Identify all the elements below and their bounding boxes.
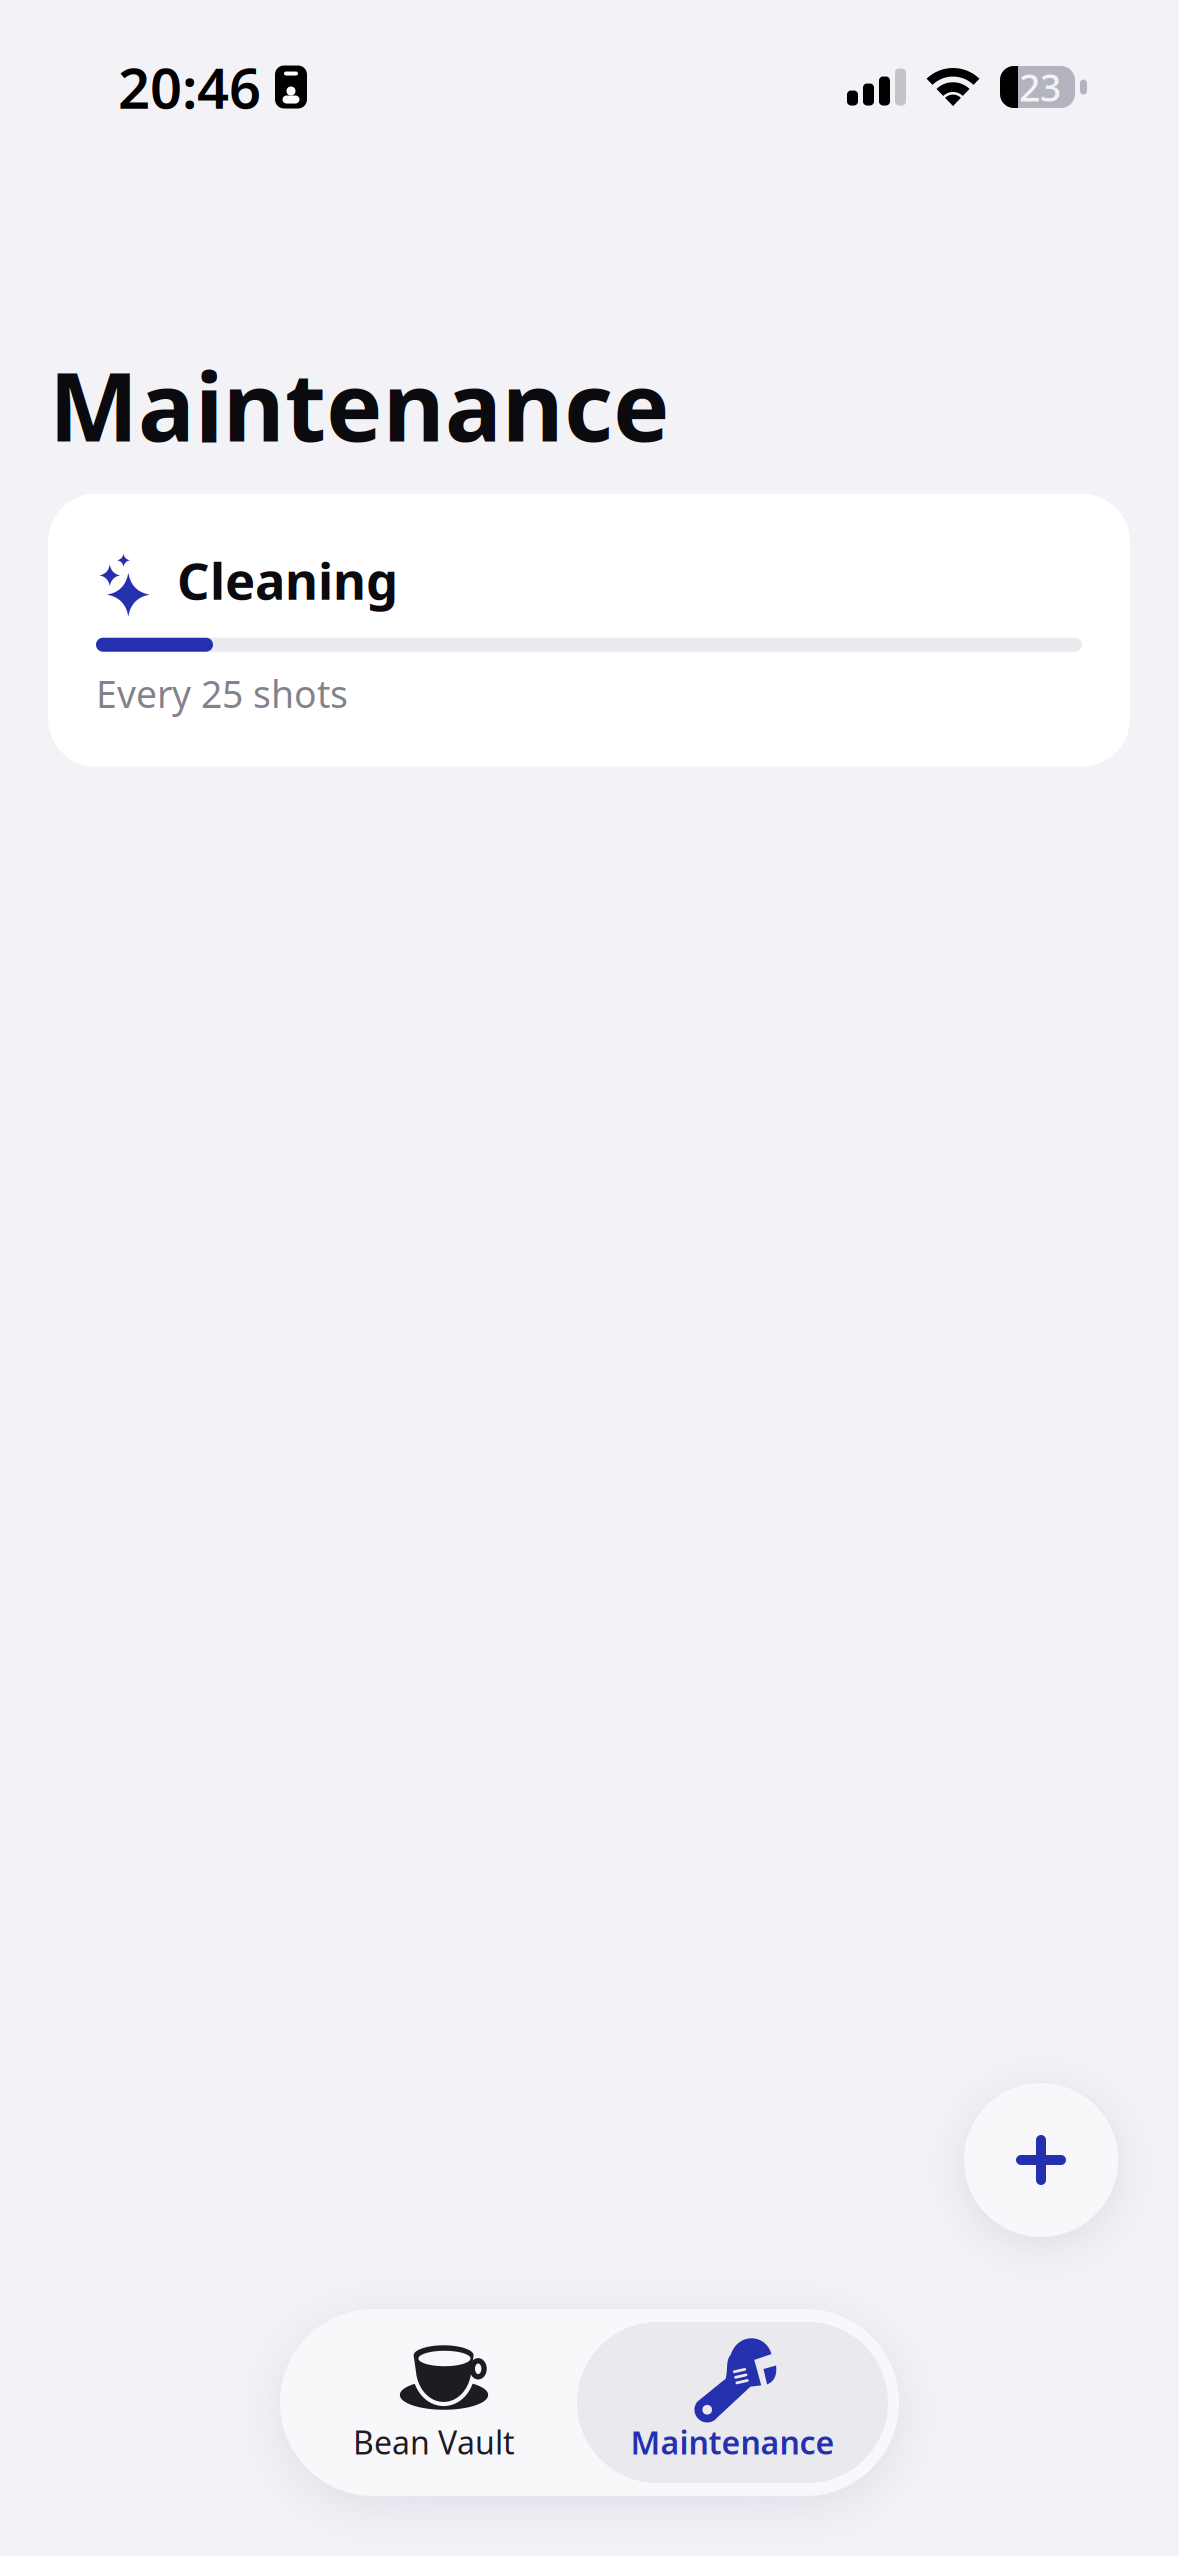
- staticText: 20:46: [118, 50, 261, 124]
- staticText: Bean Vault: [353, 2421, 515, 2463]
- staticText: Cleaning: [177, 547, 398, 614]
- staticText: Maintenance: [630, 2421, 834, 2463]
- staticText: Every 25 shots: [96, 669, 348, 718]
- button[interactable]: Cleaning: [48, 494, 1130, 767]
- button[interactable]: Add maintenance task: [964, 2083, 1118, 2237]
- button[interactable]: Maintenance: [577, 2322, 888, 2483]
- staticText: Maintenance: [49, 342, 670, 468]
- staticText: 23: [1019, 62, 1061, 112]
- button[interactable]: Bean Vault: [291, 2322, 577, 2483]
